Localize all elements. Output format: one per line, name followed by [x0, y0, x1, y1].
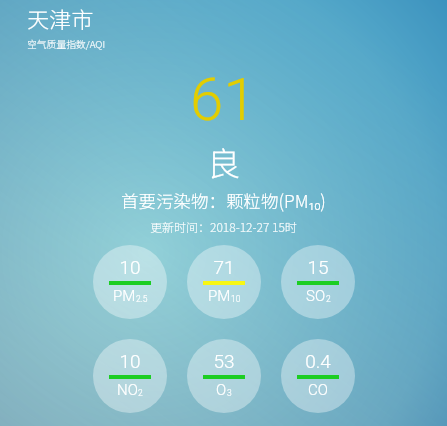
staticText: 10 [231, 294, 241, 304]
button[interactable]: CO 0.4 [281, 339, 355, 413]
staticText: 10 [119, 350, 141, 372]
button[interactable]: O3 53 [187, 339, 261, 413]
button[interactable]: NO2 10 [93, 339, 167, 413]
button[interactable]: PM2.5 10 [93, 245, 167, 319]
staticText: SO [306, 287, 326, 305]
staticText: 2 [138, 388, 143, 398]
staticText: 0.4 [305, 350, 331, 372]
staticText: CO [308, 381, 328, 399]
staticText: O [216, 381, 227, 399]
staticText: 53 [213, 350, 235, 372]
staticText: PM [113, 287, 136, 305]
staticText: 71 [213, 256, 235, 278]
staticText: 10 [119, 256, 141, 278]
staticText: 更新时间：2018-12-27 15时 [150, 218, 297, 235]
staticText: 良 [207, 138, 240, 186]
staticText: 61 [190, 64, 257, 134]
staticText: 天津市 [27, 2, 94, 34]
staticText: 首要污染物：颗粒物(PM₁₀) [121, 188, 326, 213]
staticText: 3 [227, 388, 232, 398]
staticText: 2.5 [136, 294, 148, 304]
button[interactable]: SO2 15 [281, 245, 355, 319]
button[interactable]: PM10 71 [187, 245, 261, 319]
staticText: 15 [307, 256, 329, 278]
staticText: NO [117, 381, 138, 399]
staticText: 空气质量指数/AQI [27, 37, 106, 51]
staticText: 2 [326, 294, 331, 304]
staticText: PM [208, 287, 231, 305]
